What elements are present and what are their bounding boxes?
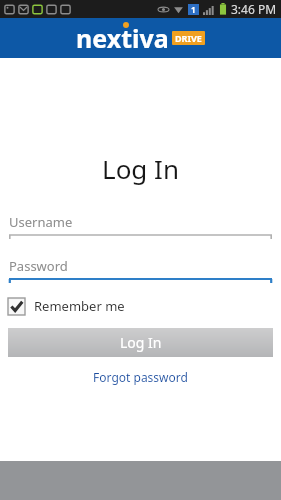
staticText: DRIVE xyxy=(175,32,202,44)
button[interactable]: Username xyxy=(0,210,281,240)
staticText: Log In xyxy=(120,333,162,352)
staticText: Remember me xyxy=(34,297,125,315)
button[interactable]: Forgot password xyxy=(0,368,281,386)
button[interactable]: Log In xyxy=(8,328,273,357)
staticText: nextiva xyxy=(76,21,169,55)
staticText: 3:46 PM xyxy=(231,1,277,17)
staticText: Password xyxy=(9,257,68,275)
button[interactable]: Password xyxy=(0,254,281,284)
staticText: 1 xyxy=(191,4,196,15)
button[interactable]: Remember me xyxy=(0,293,281,319)
staticText: Log In xyxy=(0,151,281,186)
staticText: Username xyxy=(9,213,73,231)
